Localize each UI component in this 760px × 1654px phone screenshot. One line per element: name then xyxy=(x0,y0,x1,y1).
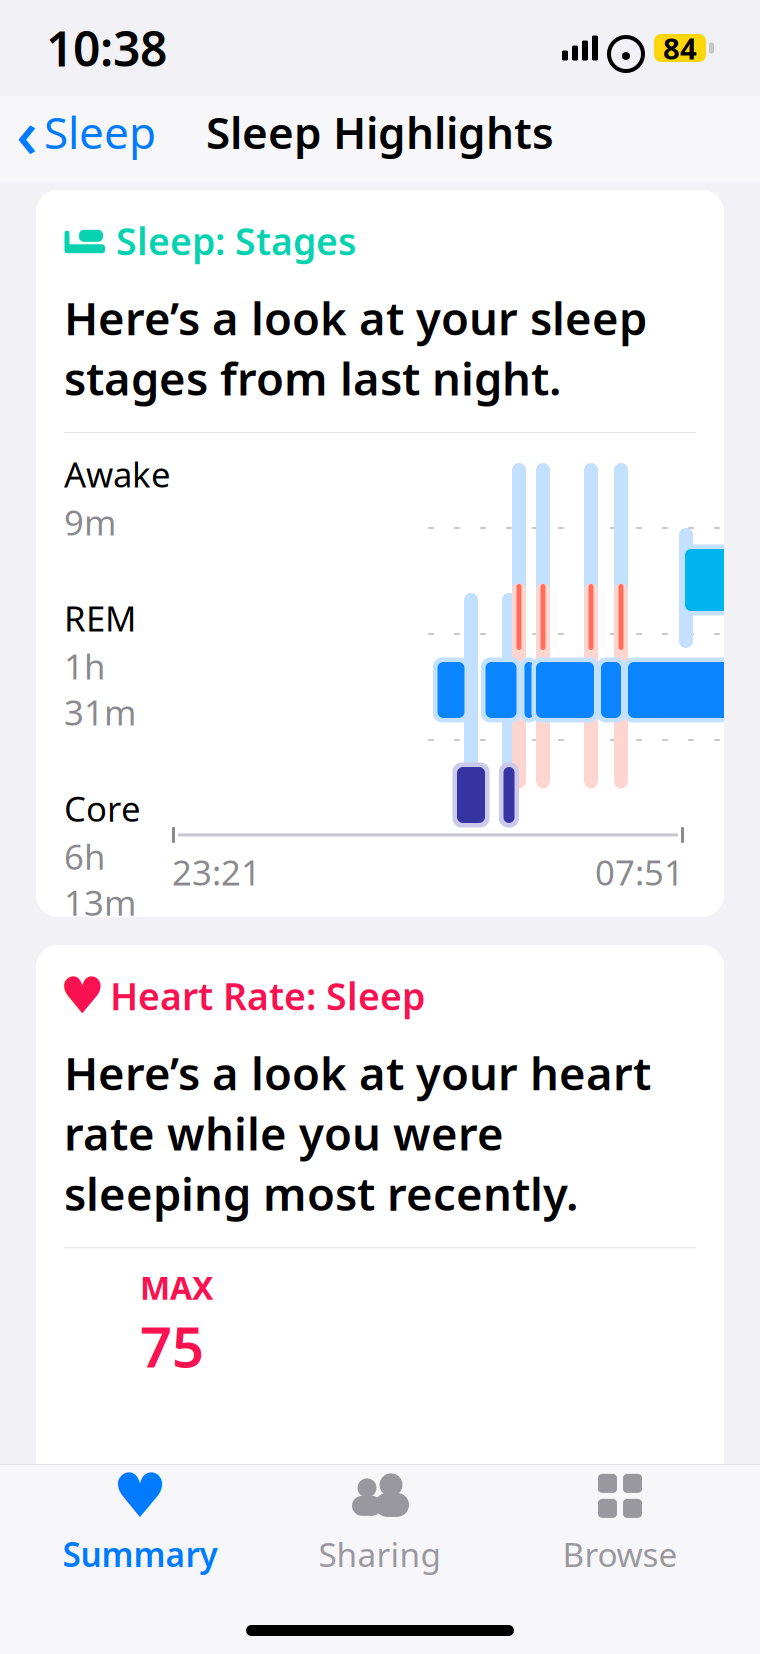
staticText: Here’s a look at your heart rate while y… xyxy=(64,1043,651,1223)
staticText: Core xyxy=(64,785,141,831)
staticText: 6h 13m xyxy=(64,833,136,925)
staticText: 10:38 xyxy=(46,16,167,80)
button[interactable]: Sharing xyxy=(260,1465,500,1583)
staticText: 33m xyxy=(64,1025,136,1071)
staticText: Sharing xyxy=(318,1532,441,1576)
button[interactable]: ♥ xyxy=(20,1465,260,1583)
staticText: Browse xyxy=(562,1532,677,1576)
staticText: ♥ xyxy=(112,1461,167,1531)
staticText: 23:21 xyxy=(172,849,261,895)
staticText: Heart Rate: Sleep xyxy=(110,971,425,1021)
staticText: Here’s a look at your sleep stages from … xyxy=(64,288,647,408)
staticText: 84 xyxy=(663,28,697,67)
button[interactable]: Browse xyxy=(500,1465,740,1583)
staticText: 1h 31m xyxy=(64,643,136,735)
staticText: 07:51 xyxy=(595,849,684,895)
staticText: Summary xyxy=(62,1532,217,1576)
staticText: Sleep xyxy=(44,103,156,161)
staticText: ‹ xyxy=(16,88,38,176)
staticText: Sleep Highlights xyxy=(206,103,554,161)
staticText: Deep xyxy=(64,977,150,1023)
staticText: ♥ xyxy=(59,967,104,1024)
staticText: Awake xyxy=(64,451,171,497)
button[interactable]: ‹ xyxy=(0,100,172,164)
staticText: REM xyxy=(64,595,136,641)
staticText: MAX xyxy=(140,1266,213,1309)
staticText: Sleep: Stages xyxy=(116,216,356,266)
staticText: 75 xyxy=(140,1309,204,1383)
staticText: 9m xyxy=(64,499,116,545)
